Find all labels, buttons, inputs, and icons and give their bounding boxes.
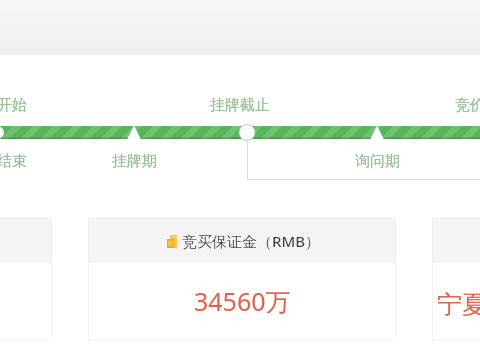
- staticText: 开始: [0, 96, 27, 115]
- staticText: 竞买保证金（RMB）: [182, 231, 321, 251]
- button[interactable]: [0, 218, 52, 341]
- staticText: 挂牌截止: [210, 96, 270, 115]
- staticText: 宁夏回族自治区银川市兴庆区: [437, 289, 480, 320]
- button[interactable]: 宁夏回族自治区银川市兴庆区: [432, 218, 480, 341]
- staticText: 结束: [0, 152, 27, 171]
- staticText: 询问期: [355, 152, 400, 171]
- staticText: 竞价: [455, 96, 480, 115]
- button[interactable]: 竞买保证金（RMB）: [88, 218, 396, 341]
- staticText: 34560万: [194, 284, 291, 318]
- staticText: 挂牌期: [112, 152, 157, 171]
